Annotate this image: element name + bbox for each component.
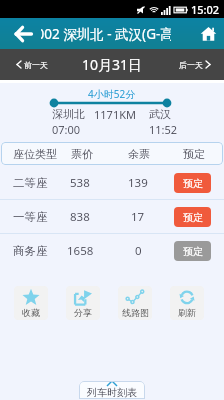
staticText: 列车时刻表: [87, 386, 137, 399]
staticText: 538: [70, 175, 90, 191]
staticText: 838: [70, 209, 90, 225]
staticText: 前一天: [24, 60, 48, 70]
staticText: 二等座: [13, 176, 48, 190]
button[interactable]: 分享: [66, 286, 100, 320]
button[interactable]: 预定: [174, 241, 211, 261]
staticText: 139: [128, 175, 148, 191]
staticText: 17: [131, 209, 145, 225]
staticText: 后一天: [179, 60, 203, 70]
staticText: 0: [135, 243, 142, 259]
button[interactable]: 刷新: [170, 286, 204, 320]
staticText: 10月31日: [70, 55, 154, 74]
staticText: 07:00: [52, 122, 81, 137]
staticText: 预定: [183, 211, 203, 224]
staticText: 1658: [67, 243, 94, 259]
staticText: 15:02: [191, 2, 220, 17]
staticText: 票价: [71, 147, 93, 161]
button[interactable]: 前一天: [0, 49, 70, 80]
staticText: 分享: [74, 307, 92, 318]
staticText: 一等座: [13, 210, 48, 224]
button[interactable]: 商务座: [0, 234, 224, 267]
staticText: G1002 深圳北 - 武汉(G-高铁): [41, 25, 171, 43]
staticText: 预定: [183, 147, 205, 161]
staticText: 预定: [183, 245, 203, 258]
staticText: 深圳北: [52, 107, 85, 121]
staticText: 商务座: [13, 244, 48, 258]
staticText: 座位类型: [13, 147, 57, 161]
button[interactable]: 预定: [174, 207, 211, 227]
staticText: 线路图: [122, 307, 149, 318]
staticText: 4小时52分: [88, 87, 136, 101]
button[interactable]: 一等座: [0, 200, 224, 233]
staticText: 预定: [183, 177, 203, 190]
button[interactable]: 二等座: [0, 166, 224, 199]
button[interactable]: Back: [0, 18, 41, 49]
button[interactable]: 预定: [174, 173, 211, 193]
button[interactable]: 列车时刻表: [79, 381, 145, 399]
button[interactable]: 线路图: [118, 286, 152, 320]
button[interactable]: 收藏: [14, 286, 48, 320]
staticText: 刷新: [178, 307, 196, 318]
staticText: 余票: [128, 147, 150, 161]
staticText: 收藏: [22, 307, 40, 318]
button[interactable]: Home: [193, 18, 224, 49]
staticText: 11:52: [149, 122, 178, 137]
button[interactable]: 后一天: [154, 49, 224, 80]
staticText: 武汉: [149, 107, 171, 121]
staticText: 1171KM: [94, 107, 136, 122]
